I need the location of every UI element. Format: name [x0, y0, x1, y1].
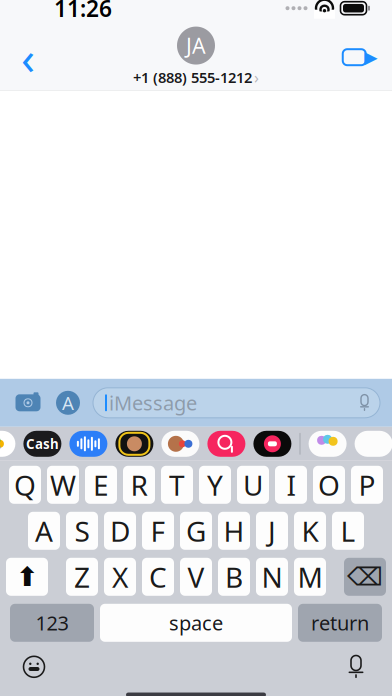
button[interactable]: X: [104, 558, 136, 596]
button[interactable]: Emoji: [14, 650, 54, 684]
button[interactable]: F: [142, 512, 174, 550]
button[interactable]: T: [161, 466, 193, 504]
staticText: P: [358, 466, 375, 503]
staticText: JA: [186, 31, 206, 60]
staticText: H: [223, 512, 244, 549]
staticText: G: [186, 512, 206, 549]
staticText: T: [169, 466, 185, 503]
staticText: ‹: [21, 27, 35, 87]
button[interactable]: Stickers: [161, 431, 199, 457]
button[interactable]: Dictate: [336, 650, 376, 684]
staticText: A: [35, 512, 53, 549]
staticText: X: [112, 558, 128, 595]
button[interactable]: D: [104, 512, 136, 550]
button[interactable]: return: [298, 604, 382, 642]
button[interactable]: Z: [66, 558, 98, 596]
staticText: O: [318, 466, 340, 503]
button[interactable]: E: [85, 466, 117, 504]
button[interactable]: Y: [199, 466, 231, 504]
staticText: U: [243, 466, 263, 503]
staticText: L: [340, 512, 355, 549]
button[interactable]: JA: [133, 27, 259, 88]
staticText: M: [297, 558, 322, 595]
button[interactable]: space: [100, 604, 292, 642]
button[interactable]: B: [218, 558, 250, 596]
button[interactable]: FaceTime: [338, 35, 382, 79]
button[interactable]: Balloons: [309, 431, 347, 457]
button[interactable]: K: [294, 512, 326, 550]
staticText: C: [149, 558, 167, 595]
staticText: B: [225, 558, 243, 595]
button[interactable]: Back: [6, 35, 50, 79]
button[interactable]: Apps: [53, 388, 83, 418]
button[interactable]: J: [256, 512, 288, 550]
button[interactable]: Gift: [253, 431, 291, 457]
button[interactable]: O: [313, 466, 345, 504]
button[interactable]: 123: [10, 604, 94, 642]
staticText: ›: [254, 67, 259, 88]
staticText: R: [130, 466, 147, 503]
button[interactable]: Apple Cash: [23, 431, 61, 457]
staticText: return: [311, 609, 369, 636]
staticText: ▶: [364, 47, 377, 67]
button[interactable]: V: [180, 558, 212, 596]
staticText: ⌫: [347, 562, 383, 591]
staticText: N: [261, 558, 282, 595]
button[interactable]: Photos: [0, 431, 15, 457]
button[interactable]: More apps: [355, 431, 392, 457]
button[interactable]: Audio: [69, 431, 107, 457]
staticText: Z: [74, 558, 90, 595]
button[interactable]: Delete: [344, 558, 386, 596]
staticText: J: [268, 512, 276, 549]
button[interactable]: G: [180, 512, 212, 550]
staticText: Y: [207, 466, 223, 503]
button[interactable]: H: [218, 512, 250, 550]
staticText: 11:26: [54, 0, 112, 23]
button[interactable]: Memoji: [115, 431, 153, 457]
staticText: iMessage: [109, 389, 197, 416]
button[interactable]: W: [47, 466, 79, 504]
staticText: space: [169, 609, 223, 636]
button[interactable]: I: [275, 466, 307, 504]
staticText: +1 (888) 555-1212: [133, 67, 252, 87]
staticText: D: [110, 512, 130, 549]
staticText: W: [50, 466, 76, 503]
button[interactable]: M: [294, 558, 326, 596]
button[interactable]: P: [351, 466, 383, 504]
button[interactable]: C: [142, 558, 174, 596]
staticText: Cash: [26, 435, 59, 453]
button[interactable]: S: [66, 512, 98, 550]
button[interactable]: L: [332, 512, 364, 550]
button[interactable]: N: [256, 558, 288, 596]
staticText: F: [150, 512, 165, 549]
button[interactable]: R: [123, 466, 155, 504]
staticText: ⬆: [16, 562, 38, 592]
button[interactable]: Images: [207, 431, 245, 457]
button[interactable]: A: [28, 512, 60, 550]
button[interactable]: Shift: [6, 558, 48, 596]
staticText: V: [187, 558, 204, 595]
button[interactable]: Q: [9, 466, 41, 504]
staticText: E: [93, 466, 109, 503]
staticText: A: [62, 390, 74, 415]
staticText: I: [286, 466, 295, 503]
staticText: K: [301, 512, 318, 549]
button[interactable]: Camera: [13, 388, 43, 418]
button[interactable]: iMessage: [93, 388, 380, 418]
staticText: 123: [35, 609, 68, 636]
button[interactable]: U: [237, 466, 269, 504]
staticText: S: [74, 512, 89, 549]
staticText: Q: [14, 466, 36, 503]
